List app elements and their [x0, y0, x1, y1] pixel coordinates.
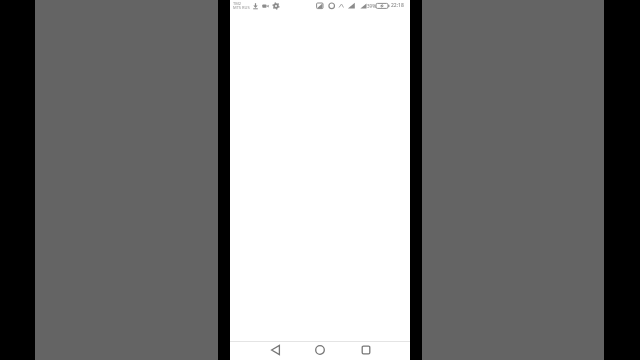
button[interactable] [261, 342, 290, 360]
staticText: TM2 [233, 1, 242, 6]
staticText: 22:18 [391, 2, 404, 9]
button[interactable] [352, 342, 380, 360]
staticText: 39% [367, 3, 376, 9]
staticText: MTS RUS [233, 5, 250, 10]
button[interactable] [306, 342, 334, 360]
